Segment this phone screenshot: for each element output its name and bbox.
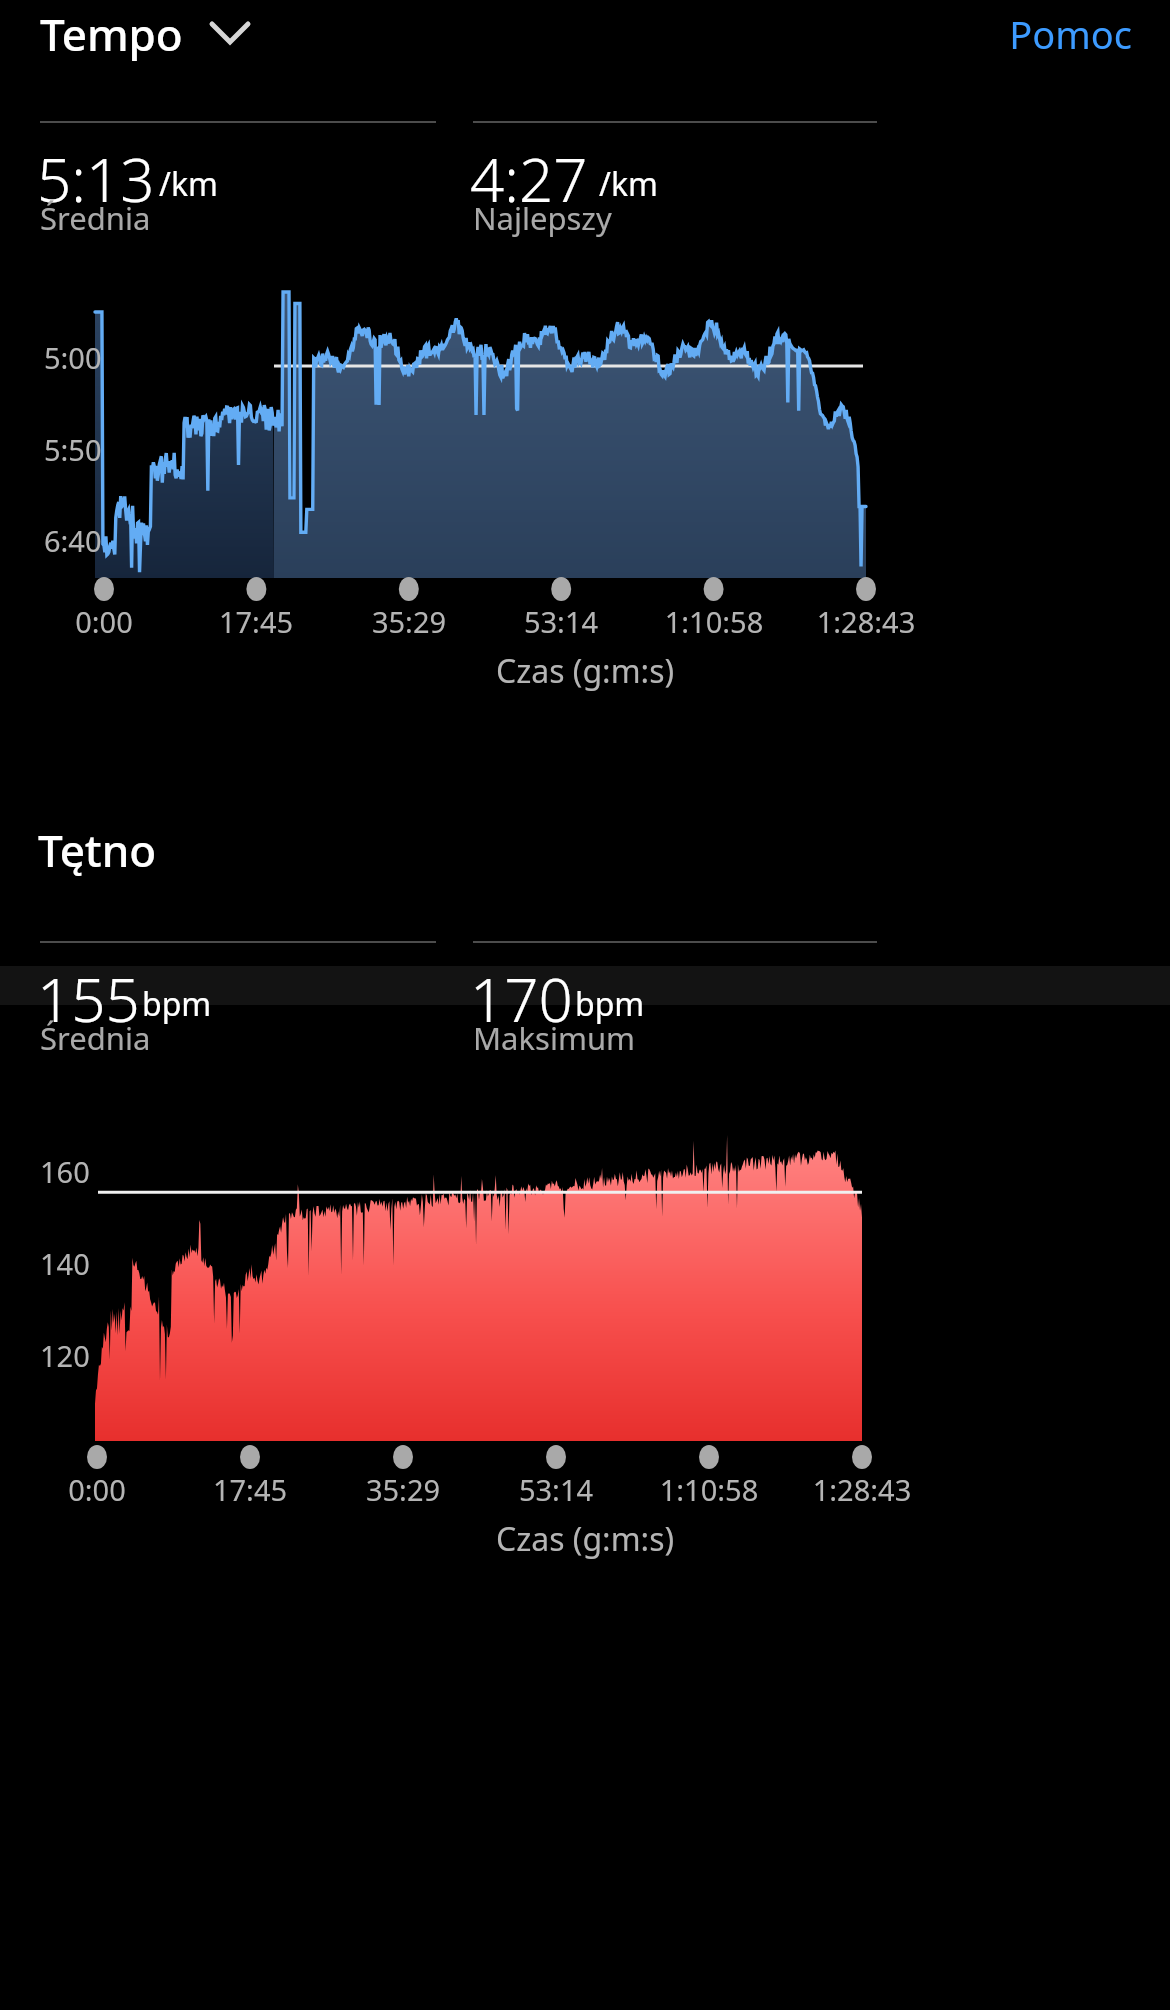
staticText: 35:29	[249, 602, 569, 644]
button[interactable]: Wykres tempa	[0, 282, 1170, 682]
staticText: Czas (g:m:s)	[425, 1517, 745, 1563]
staticText: 120	[40, 1336, 90, 1375]
staticText: Średnia	[40, 1017, 151, 1059]
staticText: Średnia	[40, 197, 151, 239]
button[interactable]: Wykres tętna	[0, 1100, 1170, 1470]
staticText: 35:29	[243, 1470, 563, 1512]
staticText: /km	[599, 162, 658, 206]
staticText: bpm	[575, 982, 645, 1026]
staticText: 5:00	[44, 338, 102, 377]
staticText: 160	[40, 1152, 90, 1191]
staticText: 170	[470, 958, 573, 1040]
staticText: 1:10:58	[554, 602, 874, 644]
staticText: Najlepszy	[473, 197, 612, 239]
staticText: Pomoc	[760, 8, 1132, 60]
staticText: 1:10:58	[549, 1470, 869, 1512]
staticText: Tempo	[40, 4, 183, 62]
staticText: 5:13	[37, 138, 155, 220]
staticText: Tętno	[38, 820, 157, 880]
staticText: 140	[40, 1244, 90, 1283]
staticText: 0:00	[0, 602, 264, 644]
staticText: 53:14	[401, 602, 721, 644]
staticText: 1:28:43	[702, 1470, 1022, 1512]
staticText: 5:50	[44, 430, 102, 469]
staticText: /km	[159, 162, 218, 206]
staticText: 6:40	[44, 521, 102, 560]
staticText: Maksimum	[473, 1017, 636, 1059]
staticText: 0:00	[0, 1470, 257, 1512]
staticText: 4:27	[470, 138, 588, 220]
staticText: bpm	[142, 982, 212, 1026]
staticText: 53:14	[396, 1470, 716, 1512]
staticText: 155	[37, 958, 140, 1040]
staticText: 17:45	[90, 1470, 410, 1512]
button[interactable]: Pomoc	[760, 2, 1132, 58]
button[interactable]: Tempo	[38, 2, 270, 60]
staticText: 17:45	[96, 602, 416, 644]
staticText: 1:28:43	[706, 602, 1026, 644]
staticText: Czas (g:m:s)	[425, 649, 745, 695]
